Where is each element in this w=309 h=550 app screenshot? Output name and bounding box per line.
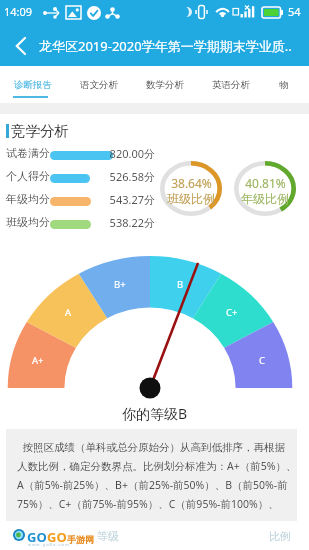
staticText: 班级比例 bbox=[167, 191, 215, 206]
staticText: GO bbox=[47, 528, 67, 546]
button[interactable]: Back bbox=[4, 30, 36, 62]
button[interactable]: 物 bbox=[264, 66, 304, 103]
staticText: 526.58分 bbox=[109, 169, 155, 184]
staticText: 竞学分析 bbox=[11, 122, 69, 140]
staticText: 比例 bbox=[269, 529, 291, 543]
button[interactable]: 数学分析 bbox=[132, 66, 198, 103]
staticText: 按照区成绩（单科或总分原始分）从高到低排序，再根据 人数比例，确定分数界点。比例… bbox=[17, 440, 302, 511]
staticText: 54 bbox=[288, 4, 301, 19]
staticText: 物 bbox=[279, 79, 289, 91]
staticText: 个人得分 bbox=[6, 169, 50, 183]
staticText: 年级比例 bbox=[241, 191, 289, 206]
staticText: 班级均分 bbox=[6, 215, 50, 229]
staticText: w w w . g o 8 o . c o m bbox=[28, 542, 69, 547]
staticText: 龙华区2019-2020学年第一学期期末学业质.. bbox=[39, 37, 292, 55]
staticText: 手游网 bbox=[67, 534, 94, 545]
staticText: B+ bbox=[114, 278, 126, 291]
button[interactable]: 比例 bbox=[260, 521, 300, 550]
staticText: 诊断报告 bbox=[14, 79, 52, 91]
staticText: 543.27分 bbox=[109, 192, 155, 207]
staticText: 等级 bbox=[97, 529, 119, 543]
staticText: GO bbox=[27, 528, 47, 546]
staticText: 40.81% bbox=[245, 175, 286, 191]
staticText: 数学分析 bbox=[146, 79, 184, 91]
staticText: C+ bbox=[226, 306, 238, 319]
staticText: C bbox=[259, 354, 266, 367]
staticText: 820.00分 bbox=[109, 146, 155, 161]
staticText: 14:09 bbox=[4, 4, 33, 19]
staticText: A+ bbox=[32, 354, 44, 367]
staticText: 年级均分 bbox=[6, 192, 50, 206]
staticText: 英语分析 bbox=[212, 79, 250, 91]
staticText: 语文分析 bbox=[80, 79, 118, 91]
button[interactable]: 诊断报告 bbox=[0, 66, 66, 103]
staticText: 38.64% bbox=[171, 175, 212, 191]
button[interactable]: 语文分析 bbox=[66, 66, 132, 103]
staticText: 试卷满分 bbox=[6, 146, 50, 160]
staticText: 538.22分 bbox=[109, 215, 155, 230]
staticText: 你的等级B bbox=[122, 404, 188, 423]
button[interactable]: 等级 bbox=[88, 521, 128, 550]
staticText: A bbox=[65, 306, 72, 319]
button[interactable]: 英语分析 bbox=[198, 66, 264, 103]
staticText: B bbox=[177, 278, 184, 291]
